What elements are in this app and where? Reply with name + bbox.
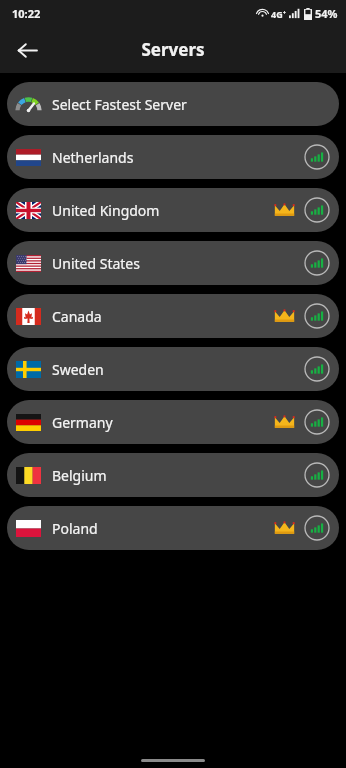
staticText: Germany	[52, 413, 113, 432]
button[interactable]: Sweden	[7, 347, 339, 391]
button[interactable]: United States	[7, 241, 339, 285]
staticText: Belgium	[52, 466, 107, 485]
button[interactable]: Belgium	[7, 453, 339, 497]
staticText: 54%	[315, 6, 338, 21]
staticText: Poland	[52, 519, 98, 538]
staticText: 4G⁺	[271, 8, 286, 20]
button[interactable]: Signal strength	[304, 515, 330, 541]
staticText: 10:22	[12, 6, 41, 21]
button[interactable]: Signal strength	[304, 250, 330, 276]
staticText: United Kingdom	[52, 201, 160, 220]
staticText: Sweden	[52, 360, 104, 379]
button[interactable]: United Kingdom	[7, 188, 339, 232]
staticText: United States	[52, 254, 140, 273]
button[interactable]: Signal strength	[304, 144, 330, 170]
staticText: Select Fastest Server	[52, 95, 187, 114]
button[interactable]: Germany	[7, 400, 339, 444]
button[interactable]: Netherlands	[7, 135, 339, 179]
button[interactable]: Back	[8, 31, 46, 69]
button[interactable]: Signal strength	[304, 356, 330, 382]
button[interactable]: Canada	[7, 294, 339, 338]
button[interactable]: Poland	[7, 506, 339, 550]
button[interactable]: Signal strength	[304, 409, 330, 435]
button[interactable]: Select Fastest Server	[7, 82, 339, 126]
staticText: Servers	[141, 38, 205, 61]
staticText: Netherlands	[52, 148, 134, 167]
button[interactable]: Signal strength	[304, 197, 330, 223]
button[interactable]: Signal strength	[304, 303, 330, 329]
button[interactable]: Signal strength	[304, 462, 330, 488]
staticText: Canada	[52, 307, 102, 326]
